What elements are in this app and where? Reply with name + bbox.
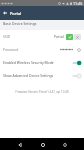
staticText: SSID — [3, 34, 11, 39]
button[interactable]: Back — [15, 140, 24, 149]
staticText: Show Advanced Device Settings — [3, 73, 54, 78]
button[interactable]: SSID — [0, 30, 84, 43]
button[interactable]: Cancel — [74, 34, 81, 40]
button[interactable]: Show Advanced Device Settings — [0, 69, 84, 82]
button[interactable]: Back — [0, 8, 10, 18]
staticText: 11:46 — [73, 1, 83, 6]
staticText: Firmware Version: Portal 1.4.47, api 1.0… — [0, 90, 84, 94]
staticText: Password — [3, 47, 19, 52]
staticText: Portal — [10, 11, 22, 16]
button[interactable]: Save — [66, 34, 73, 40]
button[interactable]: Enabled Wireless Security Mode — [0, 56, 84, 69]
button[interactable]: Show password — [75, 46, 82, 53]
button[interactable]: Home — [38, 140, 47, 149]
button[interactable]: Recents — [60, 140, 69, 149]
staticText: Portal — [54, 34, 64, 39]
staticText: Basic Device Settings — [3, 21, 37, 26]
staticText: Enabled Wireless Security Mode — [3, 60, 54, 65]
button[interactable]: Password — [0, 43, 84, 56]
